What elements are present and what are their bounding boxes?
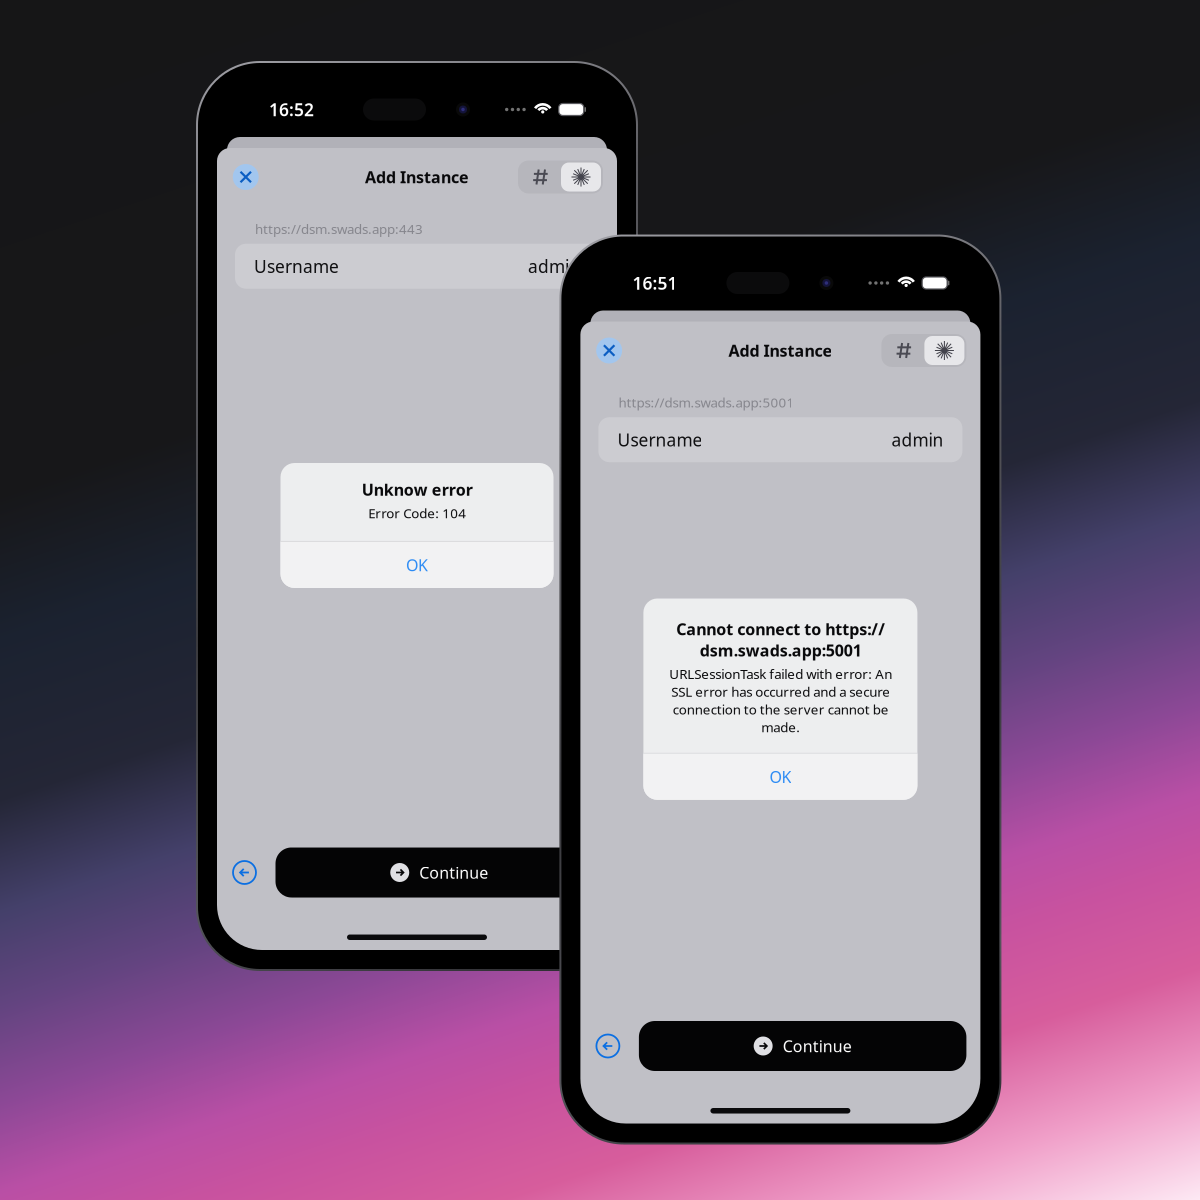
staticText: Cannot connect to https://dsm.swads.app:… — [676, 618, 885, 661]
staticText: OK — [406, 554, 428, 575]
button[interactable]: Close — [590, 331, 628, 369]
button[interactable]: OK — [643, 754, 917, 800]
staticText: URLSessionTask failed with error: An SSL… — [669, 665, 892, 736]
button[interactable]: QuickConnect — [561, 162, 601, 191]
staticText: Unknow error — [361, 479, 472, 500]
staticText: https://dsm.swads.app:443 — [255, 220, 423, 238]
staticText: 16:51 — [632, 271, 677, 294]
staticText: Continue — [419, 862, 488, 883]
button[interactable]: OK — [280, 542, 553, 588]
button[interactable]: Continue — [639, 1021, 966, 1071]
button[interactable]: Back — [217, 847, 271, 897]
staticText: Continue — [783, 1035, 852, 1057]
button[interactable]: Back — [581, 1021, 635, 1071]
staticText: Add Instance — [365, 166, 469, 188]
staticText: 16:52 — [269, 98, 314, 121]
staticText: Error Code: 104 — [368, 504, 466, 522]
button[interactable]: QuickConnect — [924, 336, 964, 365]
staticText: OK — [769, 766, 791, 787]
button[interactable]: Continue — [275, 847, 603, 897]
button[interactable]: Port number — [883, 336, 924, 365]
staticText: Username — [254, 255, 339, 278]
staticText: admin — [528, 255, 580, 278]
staticText: Username — [617, 428, 702, 451]
button[interactable]: Port number — [520, 162, 561, 191]
staticText: https://dsm.swads.app:5001 — [618, 393, 794, 411]
staticText: admin — [891, 428, 943, 451]
button[interactable]: Close — [227, 158, 265, 196]
staticText: Add Instance — [728, 340, 832, 361]
